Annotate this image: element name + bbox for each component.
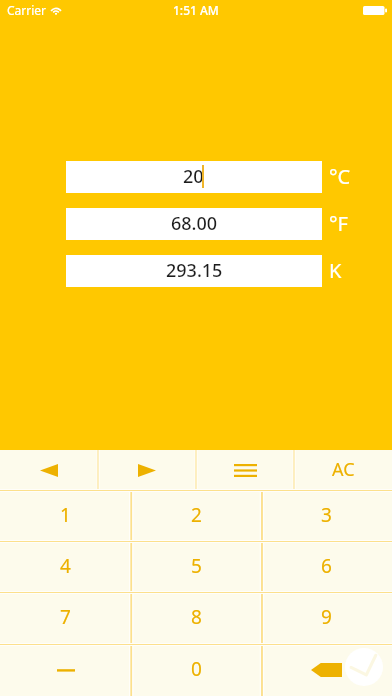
staticText: 7 — [60, 604, 71, 630]
staticText: °C — [329, 163, 351, 190]
staticText: °F — [329, 210, 348, 237]
button[interactable]: Backspace — [261, 644, 392, 696]
staticText: K — [329, 257, 342, 284]
button[interactable]: 20 — [66, 161, 322, 193]
staticText: Carrier — [7, 2, 47, 18]
staticText: 8 — [191, 604, 202, 630]
staticText: 3 — [321, 502, 332, 528]
staticText: 4 — [60, 553, 71, 579]
button[interactable]: 293.15 — [66, 255, 322, 287]
staticText: AC — [332, 457, 355, 482]
staticText: 0 — [191, 656, 202, 682]
staticText: 20 — [183, 164, 204, 189]
button[interactable]: 4 — [0, 541, 131, 592]
staticText: 293.15 — [166, 258, 223, 283]
button[interactable]: Menu — [196, 450, 294, 490]
button[interactable]: 8 — [131, 592, 262, 644]
button[interactable]: 9 — [261, 592, 392, 644]
staticText: 1 — [60, 502, 71, 528]
button[interactable]: 7 — [0, 592, 131, 644]
staticText: 1:51 AM — [173, 2, 219, 18]
button[interactable]: Minus — [0, 644, 131, 696]
staticText: 9 — [321, 604, 332, 630]
staticText: 2 — [191, 502, 202, 528]
staticText: 68.00 — [171, 211, 218, 236]
button[interactable]: 3 — [261, 490, 392, 541]
button[interactable]: Next field — [98, 450, 196, 490]
button[interactable]: All clear — [294, 450, 392, 490]
button[interactable]: 0 — [131, 644, 262, 696]
staticText: 5 — [191, 553, 202, 579]
button[interactable]: 2 — [131, 490, 262, 541]
button[interactable]: 68.00 — [66, 208, 322, 240]
button[interactable]: 6 — [261, 541, 392, 592]
button[interactable]: 1 — [0, 490, 131, 541]
staticText: 6 — [321, 553, 332, 579]
button[interactable]: 5 — [131, 541, 262, 592]
button[interactable]: Previous field — [0, 450, 98, 490]
